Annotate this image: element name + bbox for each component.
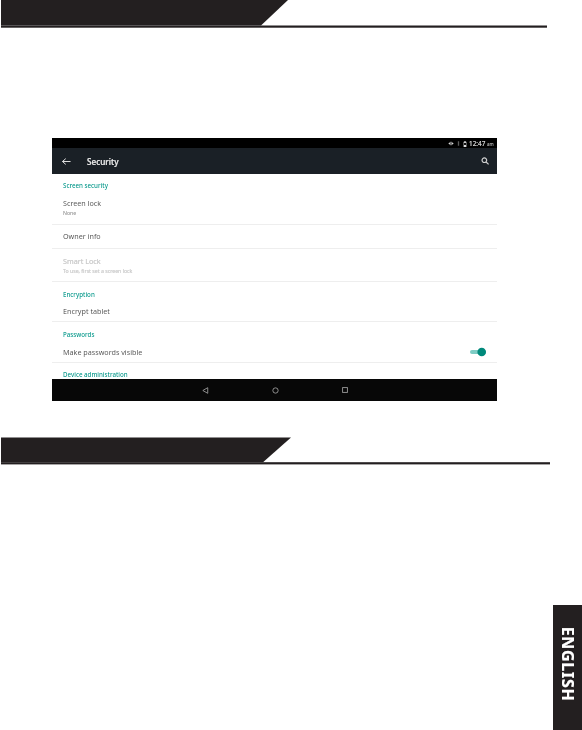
staticText: am xyxy=(487,141,494,147)
staticText: Encryption xyxy=(63,290,95,298)
staticText: Passwords xyxy=(63,330,95,338)
button[interactable]: Owner info xyxy=(52,224,497,247)
staticText: ENGLISH xyxy=(557,604,579,724)
button[interactable]: Make passwords visible xyxy=(52,342,497,362)
staticText: To use, first set a screen lock xyxy=(63,267,133,274)
button[interactable]: Encrypt tablet xyxy=(52,301,497,321)
staticText: Make passwords visible xyxy=(63,347,143,357)
button[interactable]: Search xyxy=(477,153,493,169)
button[interactable]: Home xyxy=(240,380,310,400)
staticText: None xyxy=(63,209,77,216)
staticText: Encrypt tablet xyxy=(63,306,110,316)
button[interactable]: Back xyxy=(170,380,240,400)
button[interactable]: English language tab xyxy=(553,605,582,730)
button[interactable]: Screen lock xyxy=(52,192,497,221)
staticText: Screen security xyxy=(63,181,108,189)
button[interactable]: Smart Lock xyxy=(52,248,497,281)
staticText: Smart Lock xyxy=(63,256,101,266)
staticText: Security xyxy=(87,156,119,167)
staticText: Screen lock xyxy=(63,198,102,208)
staticText: Device administration xyxy=(63,370,128,378)
staticText: Owner info xyxy=(63,231,101,241)
staticText: 12:47 xyxy=(469,139,486,148)
button[interactable]: Recent apps xyxy=(310,380,380,400)
button[interactable]: Navigate up xyxy=(58,153,74,169)
